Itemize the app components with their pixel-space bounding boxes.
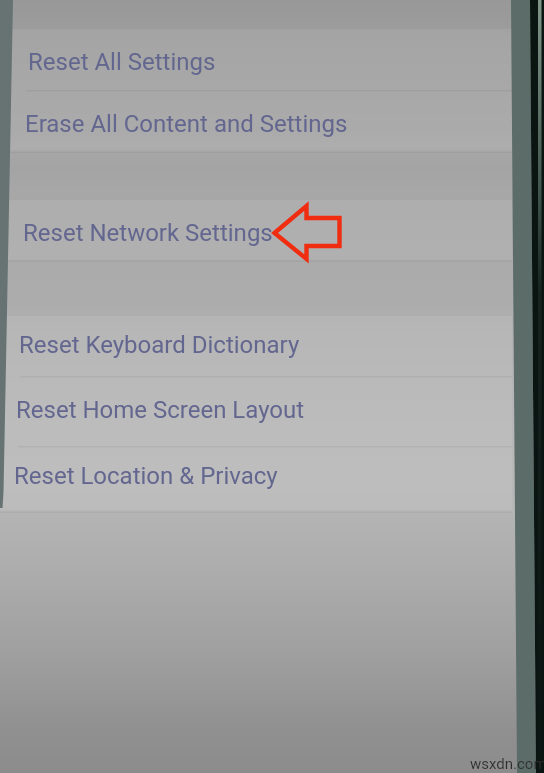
staticText: Reset Location & Privacy xyxy=(14,462,278,490)
button[interactable]: Reset Network Settings xyxy=(0,214,512,252)
staticText: Reset All Settings xyxy=(28,48,216,76)
button[interactable]: Erase All Content and Settings xyxy=(0,105,512,143)
staticText: Reset Network Settings xyxy=(23,219,273,247)
staticText: Erase All Content and Settings xyxy=(25,110,348,138)
other: Arrow pointing at Reset Network Settings xyxy=(0,0,544,773)
staticText: wsxdn.com xyxy=(470,755,544,773)
button[interactable]: Reset Home Screen Layout xyxy=(0,391,512,429)
button[interactable]: Reset Location & Privacy xyxy=(0,457,512,495)
staticText: Reset Keyboard Dictionary xyxy=(19,331,300,359)
button[interactable]: Reset Keyboard Dictionary xyxy=(0,326,512,364)
staticText: Reset Home Screen Layout xyxy=(16,396,305,424)
button[interactable]: Reset All Settings xyxy=(0,43,512,81)
